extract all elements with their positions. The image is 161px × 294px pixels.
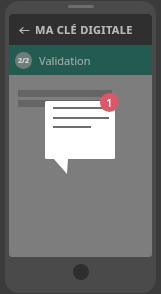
button[interactable]: Home [73,264,89,280]
staticText: 2/2 [18,56,29,66]
button[interactable]: 2/2 [9,45,152,75]
staticText: MA CLÉ DIGITALE [35,22,133,37]
button[interactable]: 1 new message [100,93,119,112]
staticText: Validation [39,53,91,68]
staticText: 1 [106,95,113,110]
button[interactable]: Back [15,21,33,39]
